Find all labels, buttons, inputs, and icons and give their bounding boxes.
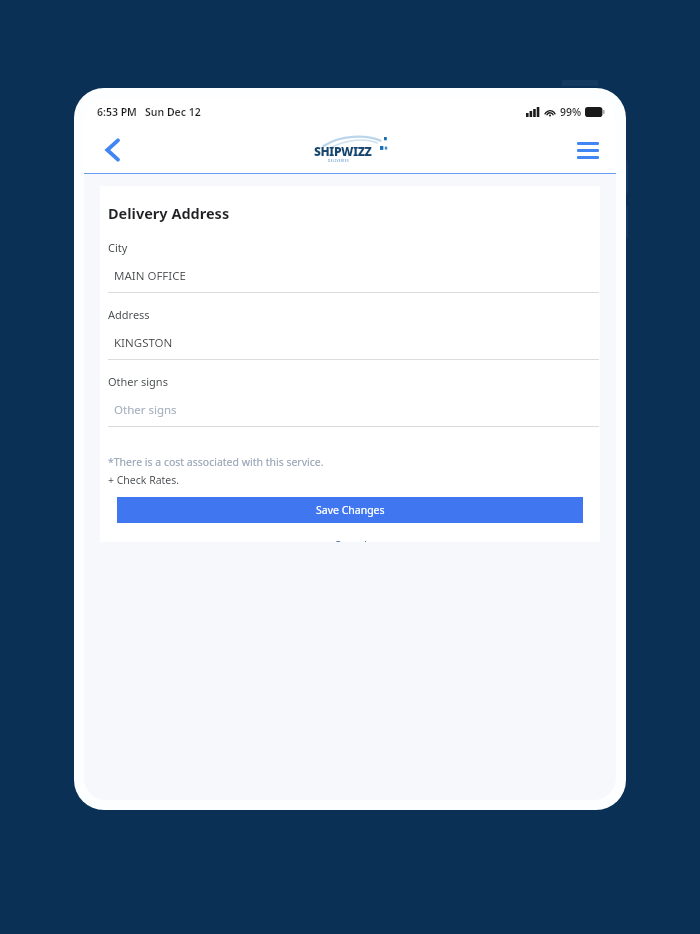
staticText: 99% <box>560 105 582 119</box>
staticText: SHIPWIZZ <box>314 143 372 159</box>
staticText: *There is a cost associated with this se… <box>108 455 324 469</box>
staticText: KINGSTON <box>114 335 173 351</box>
button[interactable]: Menu <box>568 130 608 170</box>
staticText: Other signs <box>114 402 177 418</box>
staticText: MAIN OFFICE <box>114 268 186 284</box>
button[interactable]: Save Changes <box>117 497 583 523</box>
staticText: Delivery Address <box>108 203 230 223</box>
staticText: DELIVERIES <box>328 159 350 163</box>
staticText: Cancel <box>334 538 367 542</box>
staticText: Save Changes <box>316 503 385 517</box>
staticText: Sun Dec 12 <box>145 105 201 119</box>
button[interactable]: Cancel <box>100 538 600 542</box>
button[interactable]: + Check Rates. <box>108 473 180 487</box>
staticText: + Check Rates. <box>108 473 180 487</box>
button[interactable]: Back <box>92 130 132 170</box>
staticText: Other signs <box>108 374 168 389</box>
staticText: Address <box>108 307 150 322</box>
staticText: City <box>108 240 128 255</box>
staticText: 6:53 PM <box>97 105 137 119</box>
